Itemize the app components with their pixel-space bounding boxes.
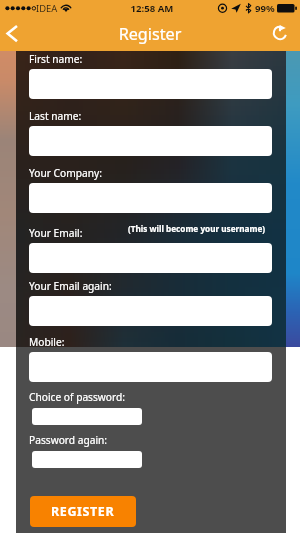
button[interactable]	[29, 243, 272, 273]
staticText: REGISTER	[51, 503, 115, 520]
staticText: Your Email again:	[29, 279, 112, 293]
button[interactable]	[29, 296, 272, 326]
button[interactable]	[29, 126, 272, 156]
button[interactable]	[29, 69, 272, 99]
staticText: First name:	[29, 52, 83, 66]
button[interactable]	[29, 183, 272, 213]
staticText: Password again:	[29, 433, 108, 447]
button[interactable]	[32, 451, 142, 468]
staticText: Your Company:	[29, 166, 102, 180]
button[interactable]: Back	[0, 17, 26, 51]
button[interactable]	[32, 408, 142, 425]
staticText: Mobile:	[29, 335, 65, 349]
staticText: Last name:	[29, 109, 82, 123]
staticText: 12:58 AM	[2, 2, 300, 15]
button[interactable]	[29, 352, 272, 382]
staticText: (This will become your username)	[128, 223, 266, 234]
staticText: Choice of password:	[29, 390, 126, 404]
button[interactable]: Reload	[270, 17, 300, 51]
staticText: Your Email:	[29, 226, 83, 240]
staticText: 99%	[255, 2, 275, 15]
button[interactable]: REGISTER	[30, 496, 136, 527]
staticText: IDEA	[36, 2, 58, 15]
staticText: Register	[0, 23, 300, 45]
